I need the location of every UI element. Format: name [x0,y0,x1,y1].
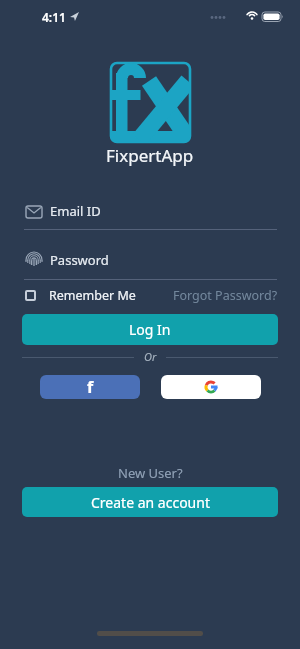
button[interactable] [161,375,261,399]
staticText: New User? [118,464,183,482]
staticText: FixpertApp [106,144,194,167]
button[interactable]: Forgot Password? [173,287,278,304]
staticText: Email ID [50,202,101,220]
button[interactable]: Remember Me [25,287,136,304]
staticText: Log In [129,320,171,339]
staticText: Create an account [91,493,210,512]
staticText: Password [50,251,109,269]
staticText: Remember Me [49,287,136,304]
staticText: Or [144,349,157,364]
button[interactable]: Create an account [22,487,278,517]
button[interactable]: Log In [22,314,278,345]
staticText: Forgot Password? [173,287,278,304]
staticText: f [87,376,94,398]
button[interactable]: f [40,375,140,399]
staticText: 4:11 [42,9,66,25]
